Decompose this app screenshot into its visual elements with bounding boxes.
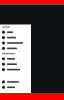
button[interactable] bbox=[0, 46, 31, 51]
button[interactable] bbox=[0, 40, 31, 46]
button[interactable] bbox=[0, 79, 31, 85]
button[interactable] bbox=[0, 35, 31, 40]
button[interactable] bbox=[0, 56, 31, 61]
button[interactable] bbox=[0, 61, 31, 67]
button[interactable] bbox=[0, 67, 31, 72]
button[interactable] bbox=[0, 85, 31, 90]
button[interactable] bbox=[0, 29, 31, 35]
